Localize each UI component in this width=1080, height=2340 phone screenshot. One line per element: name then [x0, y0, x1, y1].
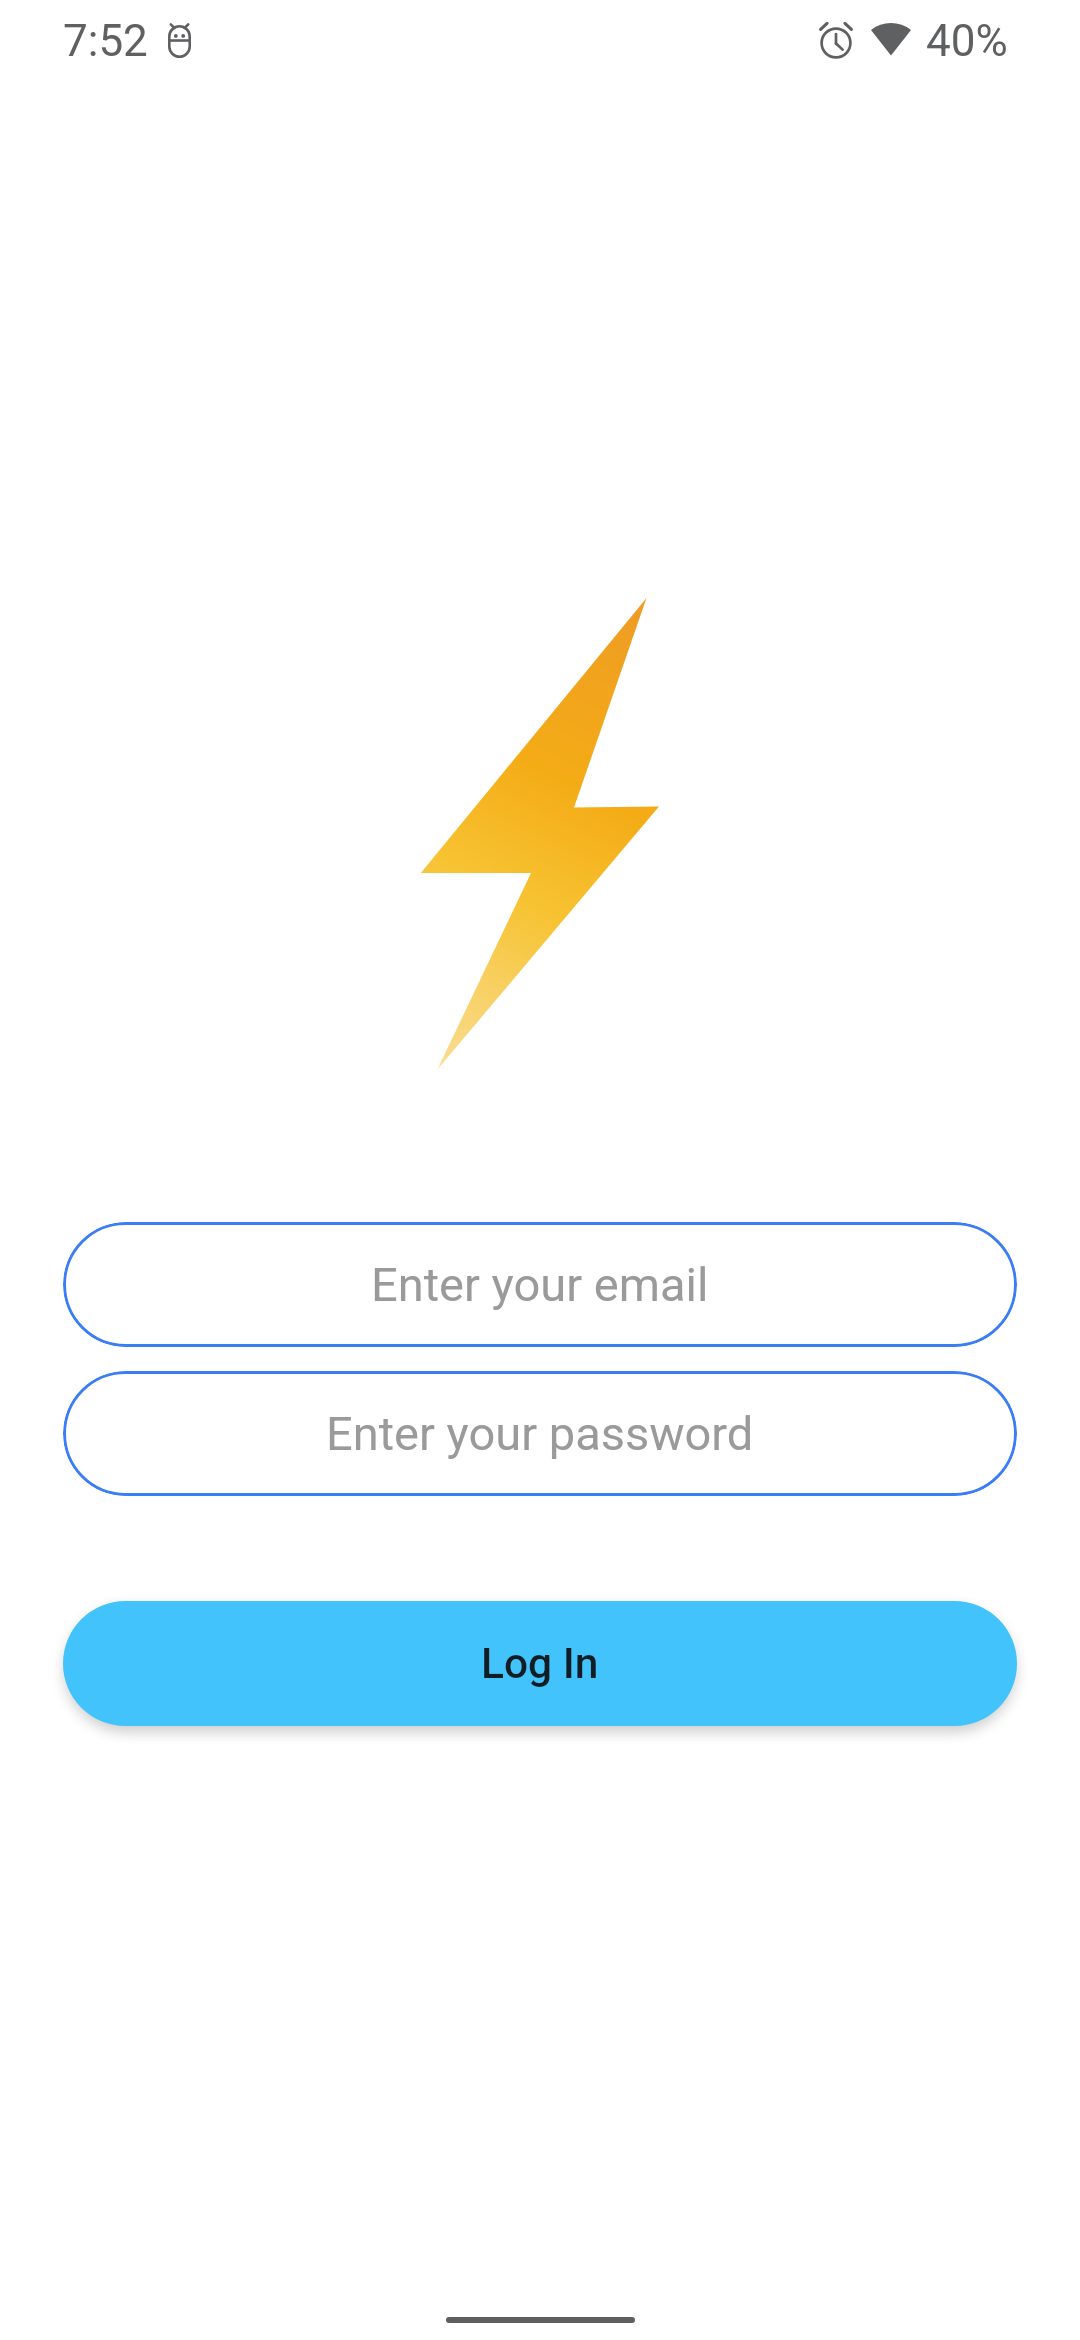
button[interactable]: Log In	[63, 1601, 1017, 1726]
other: Android debug	[168, 25, 191, 58]
button[interactable]: Enter your password	[63, 1371, 1017, 1496]
staticText: 40%	[926, 15, 1008, 67]
button[interactable]: Enter your email	[63, 1222, 1017, 1347]
staticText: Log In	[481, 1639, 599, 1689]
staticText: Enter your password	[326, 1406, 754, 1461]
other: Alarm set	[820, 22, 852, 57]
staticText: Enter your email	[371, 1257, 709, 1312]
other: Wi-Fi	[871, 22, 911, 56]
staticText: 7:52	[63, 15, 148, 67]
